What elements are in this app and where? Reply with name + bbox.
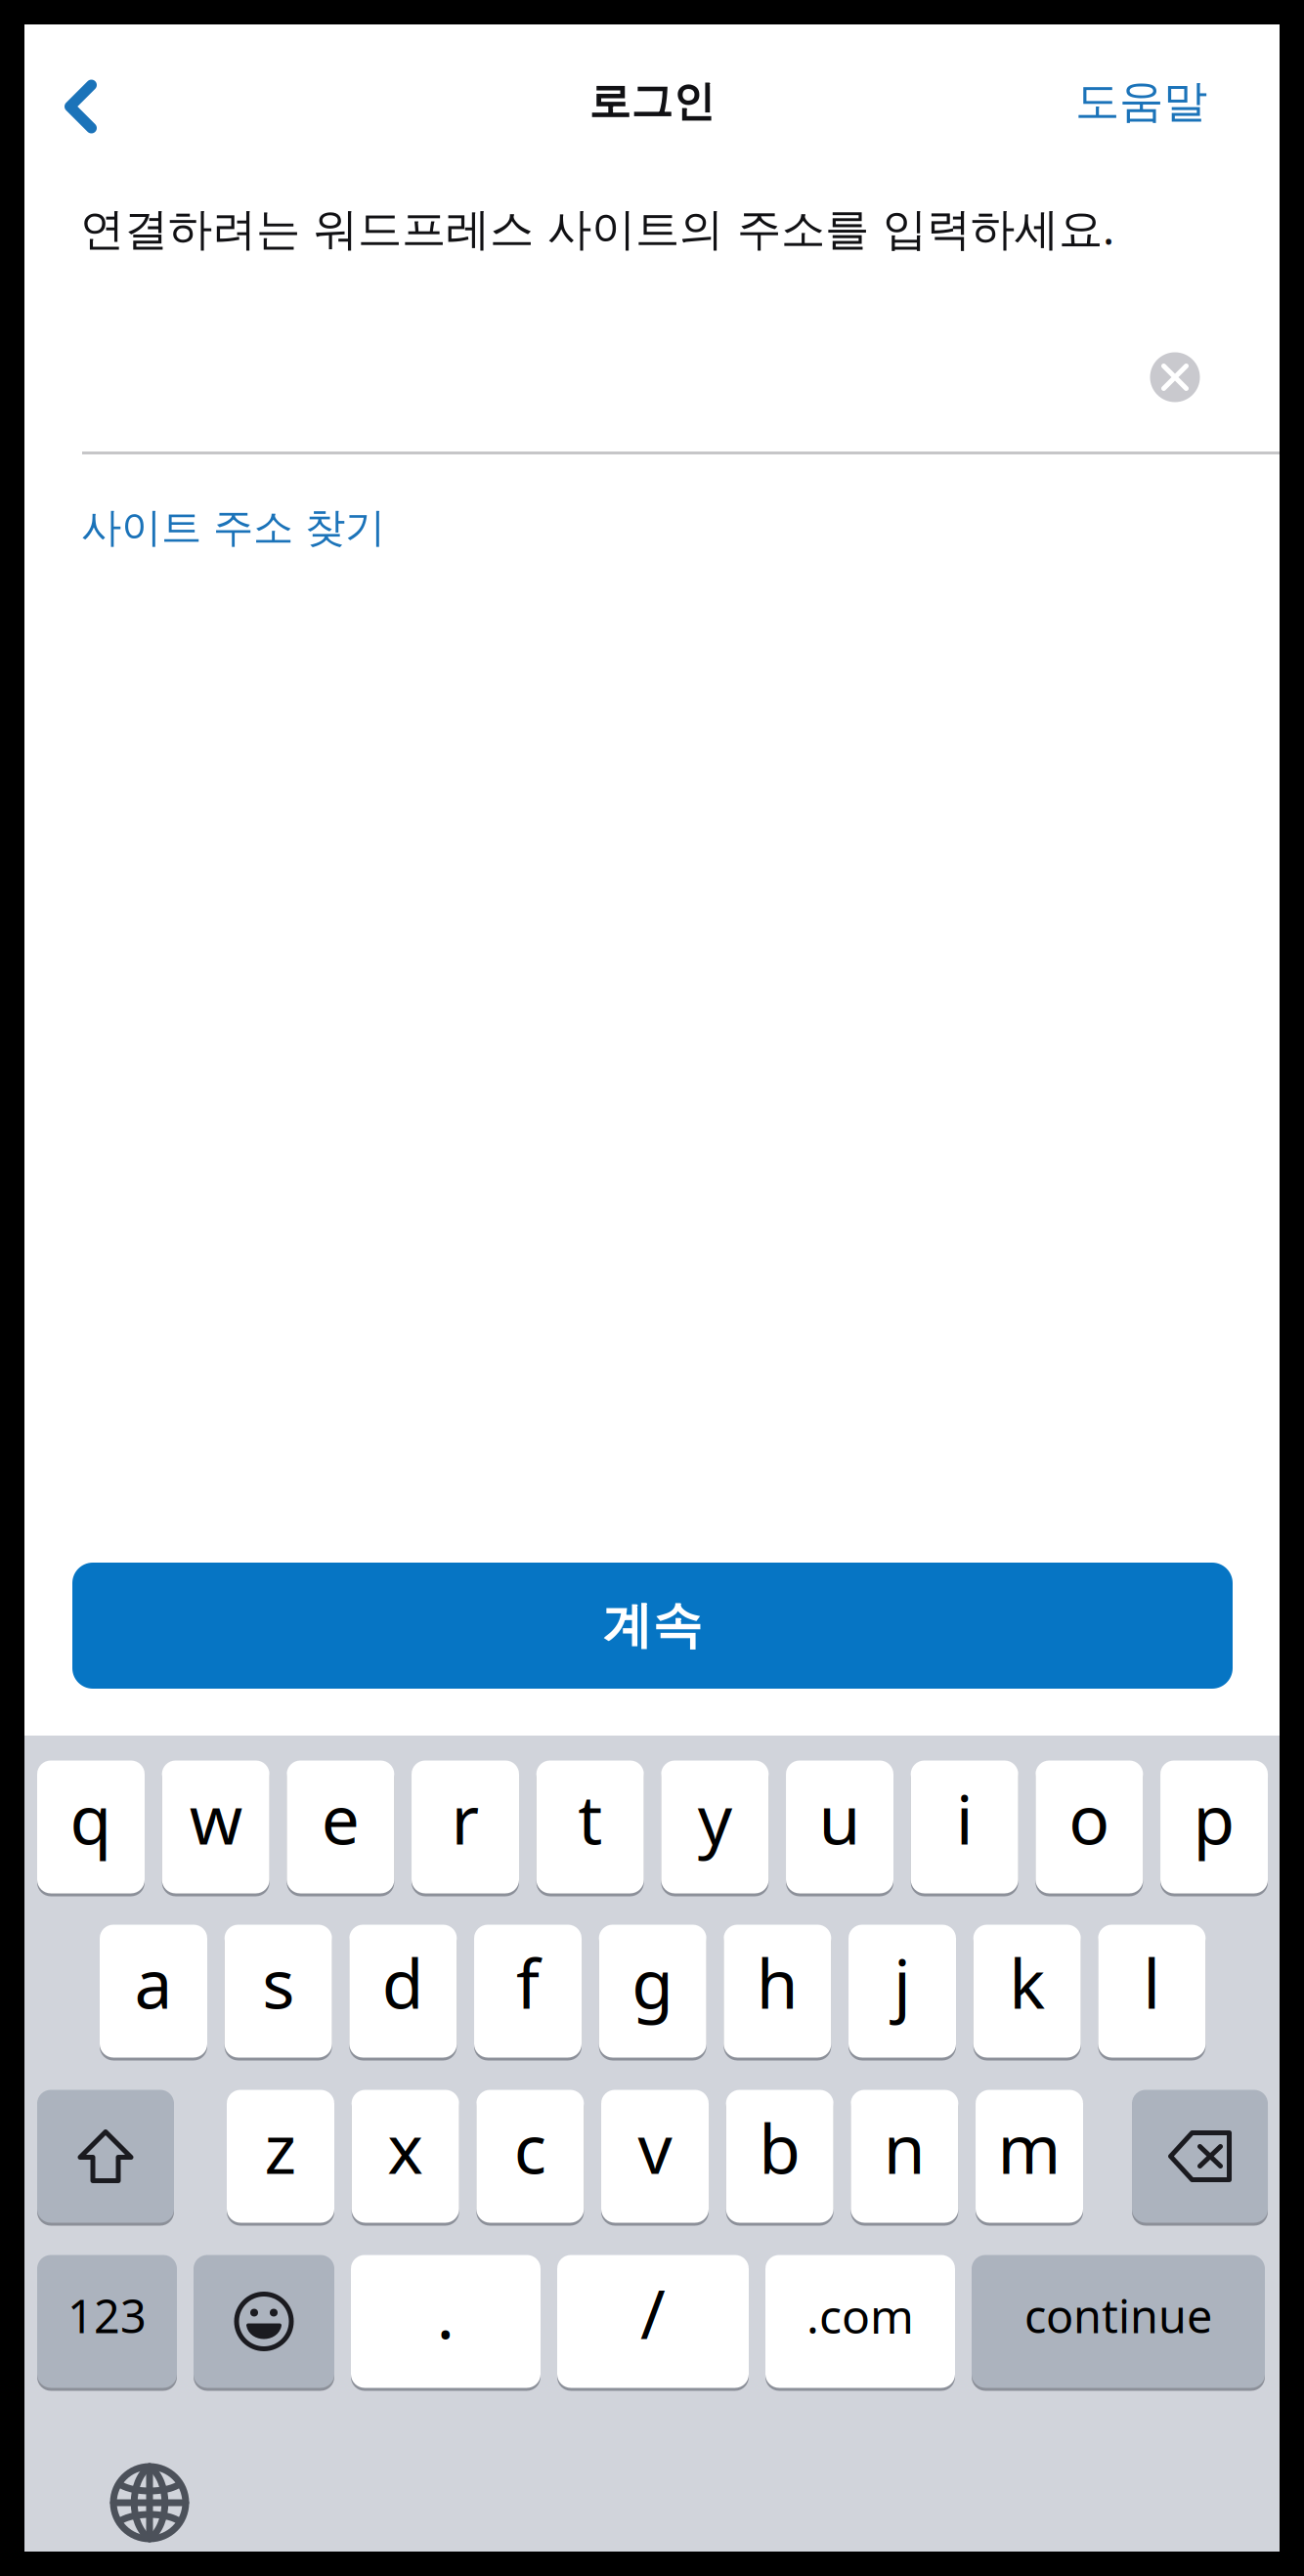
- button[interactable]: Delete: [1132, 2087, 1268, 2226]
- staticText: o: [1069, 1773, 1110, 1863]
- button[interactable]: Clear text: [1124, 324, 1226, 430]
- button[interactable]: z: [227, 2087, 334, 2226]
- button[interactable]: w: [162, 1758, 269, 1896]
- staticText: t: [578, 1773, 602, 1863]
- staticText: i: [956, 1773, 973, 1863]
- staticText: continue: [1024, 2285, 1212, 2346]
- staticText: g: [632, 1937, 674, 2027]
- staticText: v: [638, 2103, 672, 2193]
- button[interactable]: q: [37, 1758, 145, 1896]
- button[interactable]: s: [225, 1922, 332, 2061]
- staticText: 사이트 주소 찾기: [81, 503, 385, 553]
- button[interactable]: Back: [36, 58, 126, 155]
- staticText: d: [382, 1937, 424, 2027]
- button[interactable]: 123: [37, 2252, 177, 2391]
- staticText: h: [756, 1937, 799, 2027]
- button[interactable]: t: [536, 1758, 644, 1896]
- button[interactable]: e: [287, 1758, 394, 1896]
- staticText: u: [819, 1773, 861, 1863]
- button[interactable]: h: [724, 1922, 831, 2061]
- button[interactable]: f: [474, 1922, 582, 2061]
- button[interactable]: .: [351, 2252, 541, 2391]
- button[interactable]: Emoji: [194, 2252, 334, 2391]
- staticText: 123: [67, 2285, 147, 2346]
- button[interactable]: r: [412, 1758, 519, 1896]
- staticText: s: [262, 1937, 294, 2027]
- staticText: f: [516, 1937, 540, 2027]
- button[interactable]: g: [599, 1922, 706, 2061]
- button[interactable]: n: [851, 2087, 958, 2226]
- button[interactable]: c: [476, 2087, 584, 2226]
- button[interactable]: 사이트 주소 찾기: [79, 486, 387, 570]
- button[interactable]: l: [1098, 1922, 1206, 2061]
- button[interactable]: y: [661, 1758, 769, 1896]
- staticText: 도움말: [1075, 74, 1207, 129]
- button[interactable]: p: [1160, 1758, 1268, 1896]
- staticText: r: [451, 1773, 479, 1863]
- button[interactable]: i: [911, 1758, 1018, 1896]
- staticText: k: [1009, 1937, 1045, 2027]
- staticText: q: [70, 1773, 112, 1863]
- staticText: z: [264, 2103, 297, 2193]
- staticText: 연결하려는 워드프레스 사이트의 주소를 입력하세요.: [80, 198, 1114, 257]
- button[interactable]: a: [100, 1922, 207, 2061]
- staticText: a: [134, 1937, 173, 2027]
- button[interactable]: k: [973, 1922, 1081, 2061]
- button[interactable]: Next keyboard: [110, 2464, 189, 2542]
- button[interactable]: Shift: [37, 2087, 174, 2226]
- button[interactable]: o: [1036, 1758, 1143, 1896]
- staticText: w: [189, 1773, 242, 1863]
- staticText: .com: [806, 2284, 914, 2347]
- staticText: n: [884, 2103, 926, 2193]
- button[interactable]: m: [976, 2087, 1083, 2226]
- button[interactable]: x: [352, 2087, 459, 2226]
- button[interactable]: v: [601, 2087, 709, 2226]
- button[interactable]: j: [848, 1922, 956, 2061]
- staticText: 로그인: [589, 76, 715, 127]
- button[interactable]: 계속: [72, 1563, 1233, 1689]
- button[interactable]: u: [786, 1758, 893, 1896]
- button[interactable]: .com: [765, 2252, 955, 2391]
- staticText: .: [436, 2268, 455, 2358]
- button[interactable]: Site address: [82, 324, 1166, 430]
- button[interactable]: /: [557, 2252, 749, 2391]
- staticText: j: [893, 1937, 911, 2027]
- button[interactable]: b: [726, 2087, 834, 2226]
- staticText: m: [998, 2103, 1061, 2193]
- button[interactable]: continue: [972, 2252, 1265, 2391]
- staticText: b: [759, 2103, 801, 2193]
- staticText: p: [1193, 1773, 1235, 1863]
- staticText: e: [321, 1773, 360, 1863]
- staticText: l: [1143, 1937, 1161, 2027]
- staticText: /: [640, 2268, 666, 2358]
- button[interactable]: d: [349, 1922, 457, 2061]
- staticText: c: [514, 2103, 546, 2193]
- staticText: y: [698, 1773, 732, 1863]
- button[interactable]: 도움말: [1056, 53, 1227, 150]
- staticText: 계속: [603, 1595, 702, 1656]
- staticText: x: [387, 2103, 423, 2193]
